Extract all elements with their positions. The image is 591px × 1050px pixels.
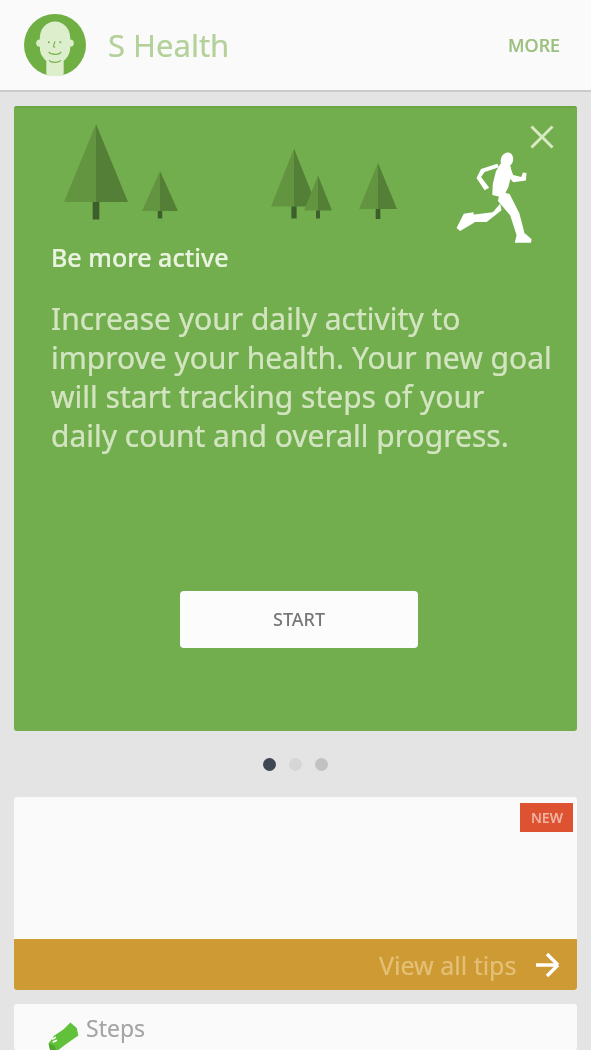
button[interactable]: Page 1: [263, 758, 276, 771]
staticText: MORE: [508, 33, 561, 58]
button[interactable]: Profile: [24, 14, 86, 76]
button[interactable]: MORE: [502, 25, 567, 66]
staticText: Steps: [86, 1012, 146, 1043]
button[interactable]: START: [180, 591, 418, 648]
staticText: NEW: [531, 808, 563, 827]
staticText: START: [273, 607, 326, 632]
button[interactable]: Close: [520, 115, 564, 159]
staticText: Be more active: [51, 240, 229, 274]
staticText: Increase your daily activity to improve …: [51, 298, 552, 455]
button[interactable]: Close: [14, 106, 577, 731]
staticText: S Health: [108, 24, 230, 66]
staticText: View all tips: [379, 948, 517, 982]
button[interactable]: Page 2: [289, 758, 302, 771]
button[interactable]: View all tips: [14, 939, 577, 990]
button[interactable]: Steps: [14, 1004, 577, 1050]
button[interactable]: NEW: [520, 803, 573, 832]
button[interactable]: Page 3: [315, 758, 328, 771]
